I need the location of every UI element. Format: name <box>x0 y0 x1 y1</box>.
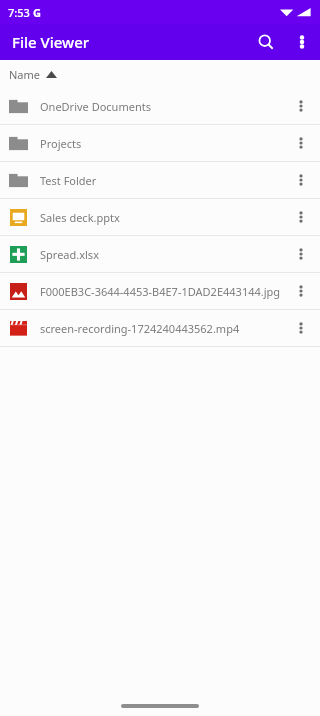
button[interactable]: OneDrive Documents <box>0 88 320 124</box>
staticText: Name <box>9 67 41 82</box>
staticText: OneDrive Documents <box>40 99 289 114</box>
staticText: F000EB3C-3644-4453-B4E7-1DAD2E443144.jpg <box>40 284 289 299</box>
staticText: G <box>33 5 41 20</box>
staticText: Projects <box>40 136 289 151</box>
button[interactable]: F000EB3C-3644-4453-B4E7-1DAD2E443144.jpg <box>0 273 320 309</box>
button[interactable]: Sales deck.pptx <box>0 199 320 235</box>
button[interactable]: More options for F000EB3C-3644-4453-B4E7… <box>289 279 313 303</box>
button[interactable]: More options for screen-recording-172424… <box>289 316 313 340</box>
button[interactable]: Projects <box>0 125 320 161</box>
button[interactable]: More options for Projects <box>289 131 313 155</box>
button[interactable]: More options for OneDrive Documents <box>289 94 313 118</box>
staticText: Spread.xlsx <box>40 247 289 262</box>
button[interactable]: More options for Spread.xlsx <box>289 242 313 266</box>
button[interactable]: Name <box>0 60 320 88</box>
button[interactable]: More options for Sales deck.pptx <box>289 205 313 229</box>
staticText: File Viewer <box>12 32 90 52</box>
button[interactable]: screen-recording-1724240443562.mp4 <box>0 310 320 346</box>
staticText: Sales deck.pptx <box>40 210 289 225</box>
button[interactable]: Search <box>248 24 284 60</box>
staticText: screen-recording-1724240443562.mp4 <box>40 321 289 336</box>
button[interactable]: Test Folder <box>0 162 320 198</box>
button[interactable]: Spread.xlsx <box>0 236 320 272</box>
button[interactable]: More options for Test Folder <box>289 168 313 192</box>
staticText: Test Folder <box>40 173 289 188</box>
button[interactable]: More options <box>284 24 320 60</box>
staticText: 7:53 <box>8 5 30 20</box>
